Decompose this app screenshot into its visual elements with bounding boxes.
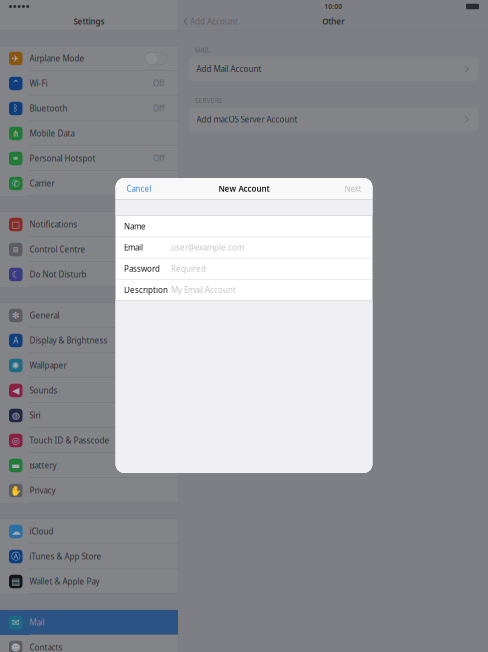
staticText: ✉ [12,617,20,628]
staticText: ✻ [12,310,20,321]
staticText: Display & Brightness [29,335,107,346]
staticText: user@example.com [171,242,244,253]
button[interactable]: Add Account [178,12,238,31]
staticText: Other [322,16,344,27]
button[interactable]: Ⓐ [0,544,178,569]
staticText: ✆ [12,178,20,189]
button[interactable]: ✺ [0,353,178,378]
staticText: ☻ [11,642,21,652]
staticText: Contacts [29,642,62,652]
staticText: Password [124,263,160,274]
button[interactable]: Add macOS Server Account [178,107,488,131]
staticText: ▢ [11,219,20,230]
button[interactable]: ◍ [0,403,178,428]
button[interactable]: ◎ [0,428,178,453]
staticText: Sounds [29,385,57,396]
button[interactable]: ▢ [0,212,178,237]
staticText: Name [124,221,146,232]
staticText: ◍ [12,410,20,421]
staticText: iCloud [29,526,53,537]
staticText: Mobile Data [29,128,74,139]
staticText: iTunes & App Store [29,551,101,562]
staticText: Add macOS Server Account [196,114,297,125]
staticText: ▬ [11,460,20,471]
staticText: Airplane Mode [29,53,84,64]
staticText: Privacy [29,485,55,496]
staticText: Mail [29,617,44,628]
button[interactable]: ⚭ [0,146,178,171]
staticText: Settings [73,16,104,27]
button[interactable]: ⌃ [0,71,178,96]
staticText: Ⓐ [11,551,20,562]
button[interactable]: ☾ [0,262,178,287]
staticText: Personal Hotspot [29,153,95,164]
staticText: ◎ [12,435,20,446]
staticText: Cancel [126,183,151,194]
staticText: ⌃ [12,78,20,89]
button[interactable]: Add Mail Account [178,57,488,81]
staticText: ✺ [12,360,20,371]
staticText: MAIL [194,46,209,54]
staticText: ⧈ [13,245,19,254]
button[interactable]: ⧈ [0,237,178,262]
button[interactable]: ✆ [0,171,178,196]
staticText: Off [153,153,165,164]
button[interactable]: ▬ [0,453,178,478]
staticText: ⚭ [12,153,20,164]
staticText: ◀ [12,385,19,396]
staticText: Wi-Fi [29,78,47,89]
button[interactable]: ✈ [0,46,178,71]
staticText: Touch ID & Passcode [29,435,109,446]
staticText: General [29,310,59,321]
staticText: Description [124,285,168,295]
staticText: Email [124,242,143,253]
staticText: Next [344,183,361,194]
button[interactable]: ☁ [0,519,178,544]
staticText: Bluetooth [29,103,67,114]
button[interactable]: ☻ [0,635,178,652]
button[interactable]: ✻ [0,303,178,328]
staticText: Battery [29,460,56,471]
staticText: SERVERS [194,96,222,105]
staticText: Add Mail Account [196,64,261,74]
staticText: ▤ [11,576,20,587]
button[interactable]: ᛒ [0,96,178,121]
staticText: My Email Account [171,285,236,295]
staticText: Off [153,103,165,114]
button[interactable]: ✋ [0,478,178,503]
button[interactable]: ⋔ [0,121,178,146]
staticText: New Account [218,183,269,194]
staticText: ᛒ [13,104,19,113]
button[interactable]: ◀ [0,378,178,403]
staticText: Wallpaper [29,360,66,371]
staticText: 10:00 [324,2,342,11]
button[interactable]: ▤ [0,569,178,594]
staticText: Off [153,78,165,89]
staticText: Wallet & Apple Pay [29,576,99,587]
staticText: ✋ [10,485,22,496]
button[interactable]: Next [344,178,372,199]
staticText: ⋔ [12,128,20,139]
staticText: ☁ [11,526,20,537]
staticText: Add Account [190,16,238,27]
staticText: Do Not Disturb [29,269,86,280]
button[interactable]: A [0,328,178,353]
staticText: A [13,335,18,346]
staticText: ☾ [12,269,20,280]
staticText: Notifications [29,219,77,230]
staticText: Required [171,263,206,274]
button[interactable]: ✉ [0,610,178,635]
staticText: Carrier [29,178,54,189]
button[interactable]: Cancel [115,178,151,199]
staticText: Control Centre [29,244,85,255]
staticText: ✈ [12,53,20,64]
staticText: Siri [29,410,40,421]
